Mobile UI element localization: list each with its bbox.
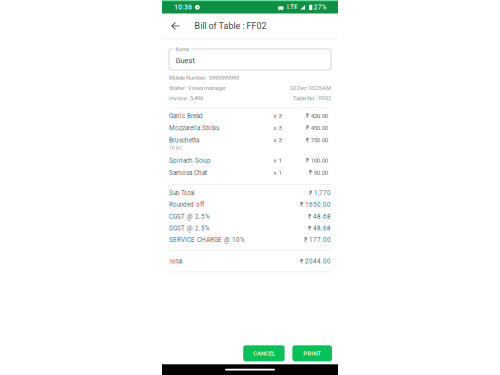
- staticText: x 3: [274, 124, 282, 131]
- staticText: CANCEL: [253, 350, 275, 357]
- staticText: CGST @ 2.5%: [169, 213, 210, 220]
- staticText: ₹ 48.68: [308, 225, 331, 232]
- staticText: ₹ 48.68: [308, 213, 331, 220]
- staticText: ₹ 50.00: [309, 169, 328, 176]
- staticText: Waiter : Viswa manager: [169, 85, 226, 91]
- staticText: ₹ 750.00: [306, 136, 328, 144]
- staticText: Mozzarella Sticks: [169, 124, 219, 132]
- staticText: x 3: [274, 136, 282, 144]
- staticText: Mobile Number : 9999999999: [169, 74, 239, 81]
- staticText: ₹ 2044.00: [300, 258, 331, 265]
- staticText: x 1: [274, 157, 282, 164]
- staticText: ₹ 420.00: [306, 112, 328, 119]
- staticText: Name: [176, 47, 190, 52]
- staticText: ₹ 100.00: [306, 157, 328, 164]
- staticText: ₹ 450.00: [306, 124, 328, 131]
- staticText: SERVICE CHARGE @ 10%: [169, 236, 245, 244]
- staticText: Total: [169, 258, 183, 265]
- staticText: ₹ 1,770: [309, 189, 331, 197]
- staticText: ₹ 177.00: [304, 236, 331, 244]
- button[interactable]: PRINT: [292, 345, 332, 361]
- staticText: SGST @ 2.5%: [169, 225, 210, 232]
- staticText: PRINT: [303, 350, 321, 357]
- staticText: x 3: [274, 112, 282, 119]
- staticText: Spinach Soup: [169, 157, 211, 164]
- staticText: 16 pc: [169, 145, 182, 151]
- staticText: 27%: [314, 4, 327, 11]
- staticText: Garlic Bread: [169, 112, 203, 120]
- staticText: Bruschetta: [169, 136, 199, 144]
- staticText: Table No. : FF02: [293, 95, 331, 102]
- staticText: ₹ 1650.00: [300, 201, 331, 208]
- staticText: 10:36: [174, 4, 192, 11]
- staticText: Samosa Chat: [169, 169, 207, 177]
- button[interactable]: Back: [167, 13, 184, 38]
- staticText: Invoice : 5,496: [169, 95, 203, 102]
- staticText: Rounded off: [169, 201, 204, 208]
- button[interactable]: CANCEL: [243, 345, 285, 361]
- staticText: 02 Dec 10:23:AM: [290, 85, 331, 91]
- staticText: LTE: [287, 4, 298, 11]
- staticText: Sub Total: [169, 189, 195, 197]
- staticText: x 1: [274, 169, 282, 176]
- staticText: Bill of Table : FF02: [195, 21, 267, 31]
- staticText: Guest: [175, 56, 194, 65]
